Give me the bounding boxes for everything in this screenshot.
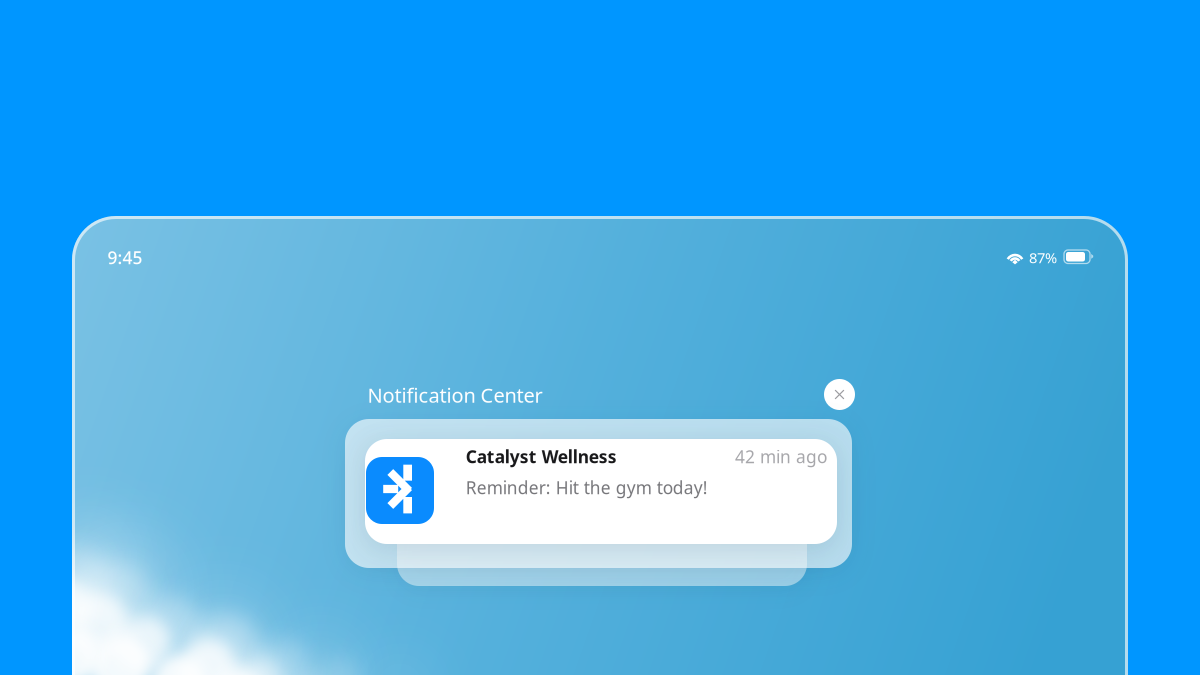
staticText: 87% xyxy=(1029,248,1057,267)
button[interactable]: Catalyst Wellness xyxy=(365,439,837,544)
button[interactable]: Close Notification Center xyxy=(824,379,855,410)
staticText: Reminder: Hit the gym today! xyxy=(466,476,708,499)
staticText: 9:45 xyxy=(107,246,142,269)
staticText: Notification Center xyxy=(367,382,542,408)
staticText: 42 min ago xyxy=(735,445,827,468)
staticText: Catalyst Wellness xyxy=(466,445,617,468)
